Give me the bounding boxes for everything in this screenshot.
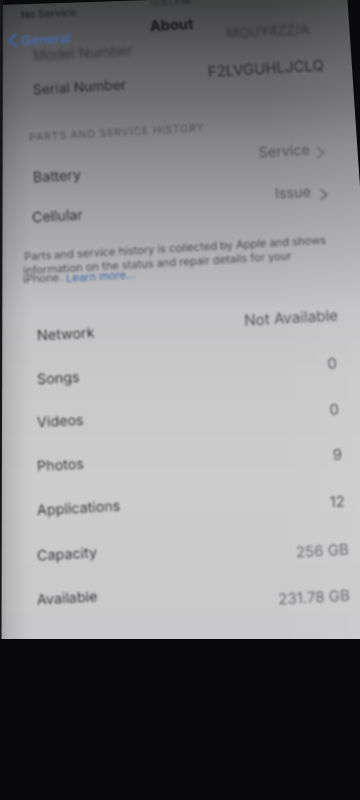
staticText: 12 (185, 492, 345, 519)
staticText: No Service (21, 5, 77, 21)
staticText: 0 (179, 400, 339, 427)
staticText: 231.78 GB (190, 585, 350, 612)
staticText: Applications (37, 497, 121, 518)
staticText: Available (37, 587, 98, 608)
staticText: Cellular (32, 206, 83, 225)
staticText: Photos (37, 455, 84, 474)
staticText: Songs (37, 368, 80, 387)
staticText: Service (150, 140, 310, 166)
staticText: Learn more... (66, 267, 136, 284)
staticText: Network (37, 323, 95, 344)
staticText: 11:51 PM (149, 0, 191, 9)
staticText: PARTS AND SERVICE HISTORY (29, 121, 205, 144)
staticText: F2LVGUHLJCLQ (164, 55, 324, 83)
staticText: Issue (151, 182, 311, 208)
staticText: Model Number (33, 41, 133, 64)
staticText: MQUY4ZZ/A (226, 20, 310, 41)
staticText: 0 (177, 354, 337, 381)
staticText: Parts and service history is collected b… (24, 233, 327, 262)
staticText: Battery (33, 166, 81, 185)
staticText: 9 (182, 445, 342, 472)
staticText: Capacity (37, 543, 98, 564)
staticText: 256 GB (189, 539, 349, 566)
staticText: Serial Number (33, 76, 126, 99)
button[interactable]: Details (319, 189, 329, 201)
staticText: General (21, 30, 71, 48)
staticText: information on the status and repair det… (23, 248, 292, 276)
staticText: Videos (37, 411, 84, 430)
staticText: About (150, 15, 194, 35)
staticText: Not Available (178, 305, 338, 332)
button[interactable]: Details (316, 147, 326, 159)
staticText: iPhone. (23, 270, 63, 285)
button[interactable]: General (5, 29, 74, 51)
